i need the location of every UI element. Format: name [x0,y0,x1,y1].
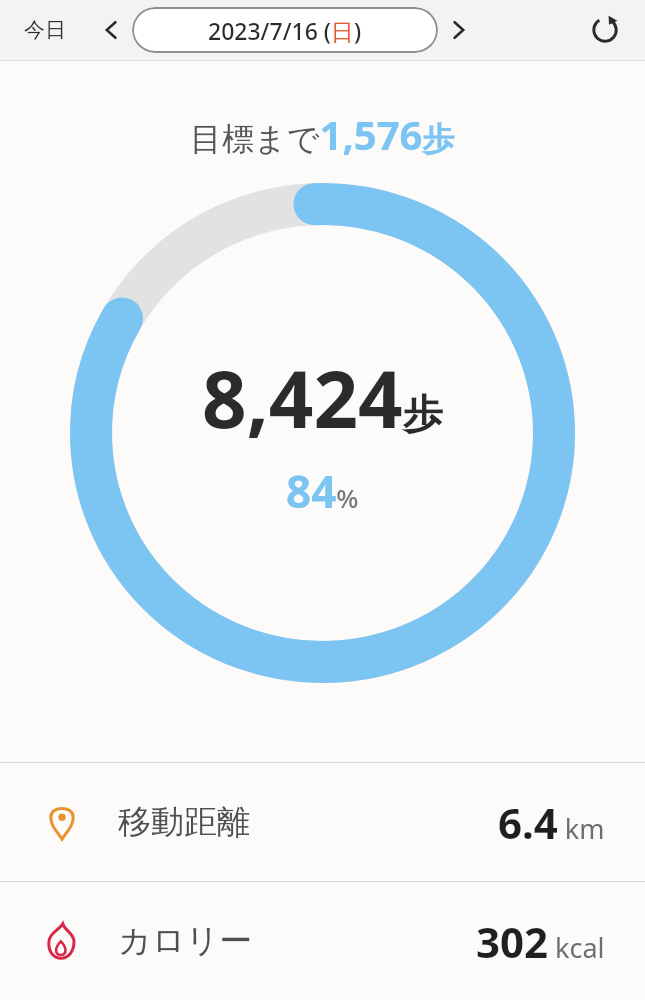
button[interactable]: Refresh [579,4,631,56]
staticText: 2023/7/16 (日) [208,15,362,46]
staticText: 6.4 km [498,794,605,851]
button[interactable]: Next day [440,10,480,50]
other: Calories [40,919,84,963]
staticText: カロリー [118,920,253,962]
button[interactable]: 今日 [14,11,76,49]
button[interactable]: Calories [0,882,645,1000]
staticText: 移動距離 [118,801,250,843]
button[interactable]: 2023/7/16 (日) [132,7,438,53]
button[interactable]: Previous day [90,10,130,50]
staticText: 今日 [24,17,66,43]
staticText: 8,424歩 [202,345,443,451]
button[interactable]: Distance [0,763,645,881]
staticText: 302 kcal [476,913,605,970]
other: Distance [40,800,84,844]
staticText: 目標まで1,576歩 [190,107,455,161]
staticText: 84% [286,461,359,521]
